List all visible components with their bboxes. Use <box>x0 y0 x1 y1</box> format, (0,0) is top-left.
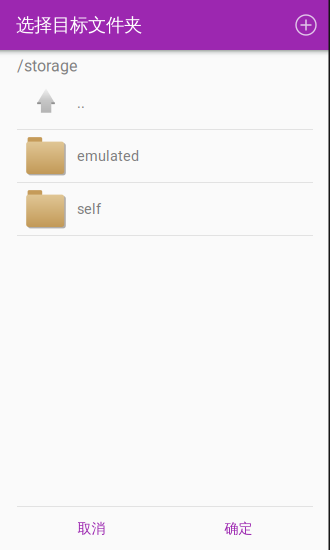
staticText: 选择目标文件夹 <box>16 13 142 37</box>
staticText: /storage <box>17 57 77 75</box>
button[interactable]: 确定 <box>165 507 312 550</box>
button[interactable]: self <box>0 183 330 235</box>
staticText: .. <box>77 95 85 111</box>
button[interactable]: New folder <box>293 12 319 38</box>
button[interactable]: 取消 <box>18 507 165 550</box>
button[interactable]: emulated <box>0 130 330 182</box>
staticText: 确定 <box>224 520 252 537</box>
staticText: 取消 <box>77 520 105 537</box>
staticText: emulated <box>77 148 139 164</box>
button[interactable]: .. <box>0 77 330 129</box>
staticText: self <box>77 201 101 217</box>
